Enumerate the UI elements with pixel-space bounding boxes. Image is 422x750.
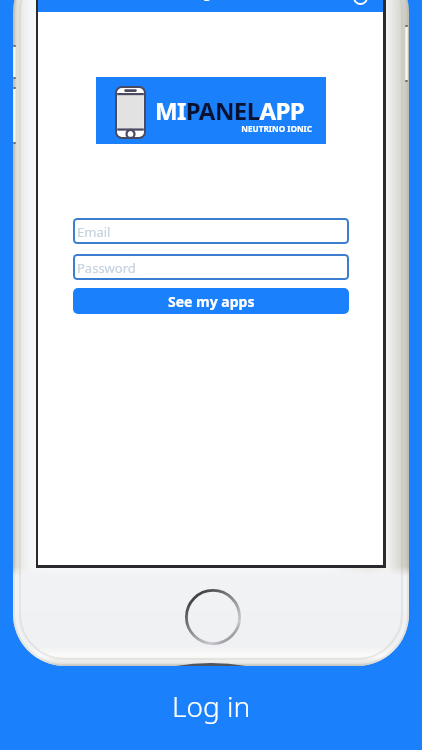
staticText: See my apps <box>168 292 255 311</box>
button[interactable]: Password <box>73 254 349 280</box>
staticText: Password <box>77 259 136 277</box>
staticText: Login <box>188 0 223 2</box>
button[interactable]: Account <box>347 0 373 10</box>
staticText: NEUTRINO IONIC <box>158 123 312 134</box>
staticText: MIPANELAPP <box>155 94 305 127</box>
button[interactable]: See my apps <box>73 288 349 314</box>
button[interactable]: Email <box>73 218 349 244</box>
staticText: Email <box>77 223 111 241</box>
staticText: Log in <box>172 687 251 725</box>
